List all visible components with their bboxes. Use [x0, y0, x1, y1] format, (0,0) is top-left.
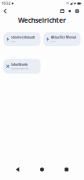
- button[interactable]: Home: [35, 164, 49, 175]
- button[interactable]: Schaltkarte: [3, 59, 41, 74]
- button[interactable]: Back: [1, 7, 9, 15]
- staticText: Aktueller Monat: [51, 35, 76, 39]
- button[interactable]: Settings: [73, 7, 81, 15]
- staticText: Wechselrichter: [18, 15, 66, 25]
- staticText: Schaltkarte: [11, 63, 28, 67]
- staticText: LTE: [66, 2, 69, 5]
- staticText: Automatikbetrieb: [11, 67, 28, 70]
- staticText: kWh: [51, 40, 55, 43]
- button[interactable]: Live status: [66, 7, 73, 15]
- staticText: kWh: [11, 40, 15, 43]
- button[interactable]: Calendar: [59, 7, 66, 15]
- button[interactable]: Back: [10, 164, 24, 175]
- staticText: Stromverbrauch: [11, 35, 35, 39]
- button[interactable]: Aktueller Monat: [43, 32, 81, 46]
- button[interactable]: Stromverbrauch: [3, 32, 41, 46]
- button[interactable]: Recent apps: [59, 164, 73, 175]
- staticText: 10:52: [2, 1, 11, 6]
